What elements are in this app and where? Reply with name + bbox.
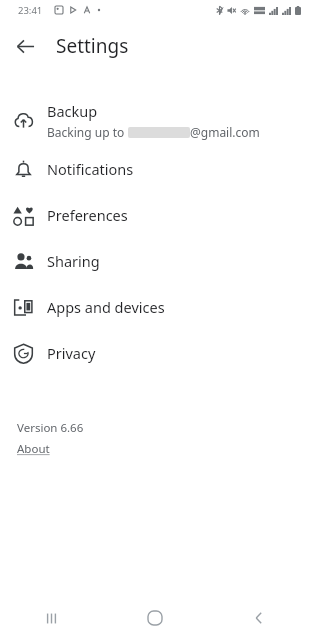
staticText: Preferences [47,205,128,225]
staticText: Sharing [47,251,100,271]
staticText: @gmail.com [190,124,260,140]
button[interactable]: Recents [0,596,103,640]
staticText: 23:41 [18,4,43,17]
staticText: Backing up to [47,124,128,140]
button[interactable]: Notifications [0,146,311,192]
button[interactable]: Back [8,29,42,63]
staticText: Settings [56,33,129,59]
button[interactable]: Sharing [0,238,311,284]
button[interactable]: Home [103,596,207,640]
staticText: Backup [47,101,98,121]
button[interactable]: Backup [0,94,311,146]
staticText: Notifications [47,159,134,179]
staticText: Privacy [47,343,96,363]
button[interactable]: About [17,441,50,457]
button[interactable]: Privacy [0,330,311,376]
button[interactable]: Apps and devices [0,284,311,330]
button[interactable]: Preferences [0,192,311,238]
staticText: About [17,441,50,457]
button[interactable]: Back [207,596,311,640]
staticText: Version 6.66 [17,420,84,436]
staticText: Apps and devices [47,297,165,317]
